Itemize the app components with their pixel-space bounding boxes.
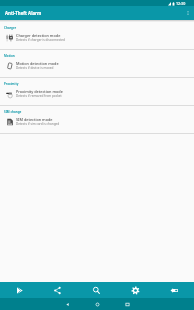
button[interactable]: More options (181, 6, 194, 20)
button[interactable]: Proximity detection mode (0, 86, 194, 101)
button[interactable]: Search (77, 282, 116, 298)
button[interactable]: SIM detection mode (0, 114, 194, 129)
staticText: Proximity detection mode (16, 89, 63, 94)
button[interactable]: Settings (116, 282, 155, 298)
staticText: Detects if sim card is changed (16, 122, 60, 126)
staticText: Detects if device is moved (16, 66, 54, 70)
button[interactable]: Share (38, 282, 77, 298)
staticText: Motion (4, 54, 15, 58)
button[interactable]: Play (0, 282, 38, 298)
button[interactable]: Motion detection mode (0, 58, 194, 73)
staticText: Detects if charger is disconnected (16, 38, 65, 42)
staticText: Proximity (4, 82, 19, 86)
staticText: Detects if removed from pocket (16, 94, 62, 98)
staticText: Charger (4, 26, 17, 30)
staticText: SIM detection mode (16, 117, 53, 122)
staticText: Anti-Theft Alarm (5, 10, 42, 16)
staticText: Motion detection mode (16, 61, 59, 66)
button[interactable]: Recents (121, 298, 133, 310)
button[interactable]: Back (61, 298, 73, 310)
staticText: 12:30 (176, 1, 186, 6)
button[interactable]: Charger detection mode (0, 30, 194, 45)
button[interactable]: Home (91, 298, 103, 310)
button[interactable]: Exit (155, 282, 194, 298)
staticText: SIM change (4, 110, 22, 114)
staticText: Charger detection mode (16, 33, 61, 38)
